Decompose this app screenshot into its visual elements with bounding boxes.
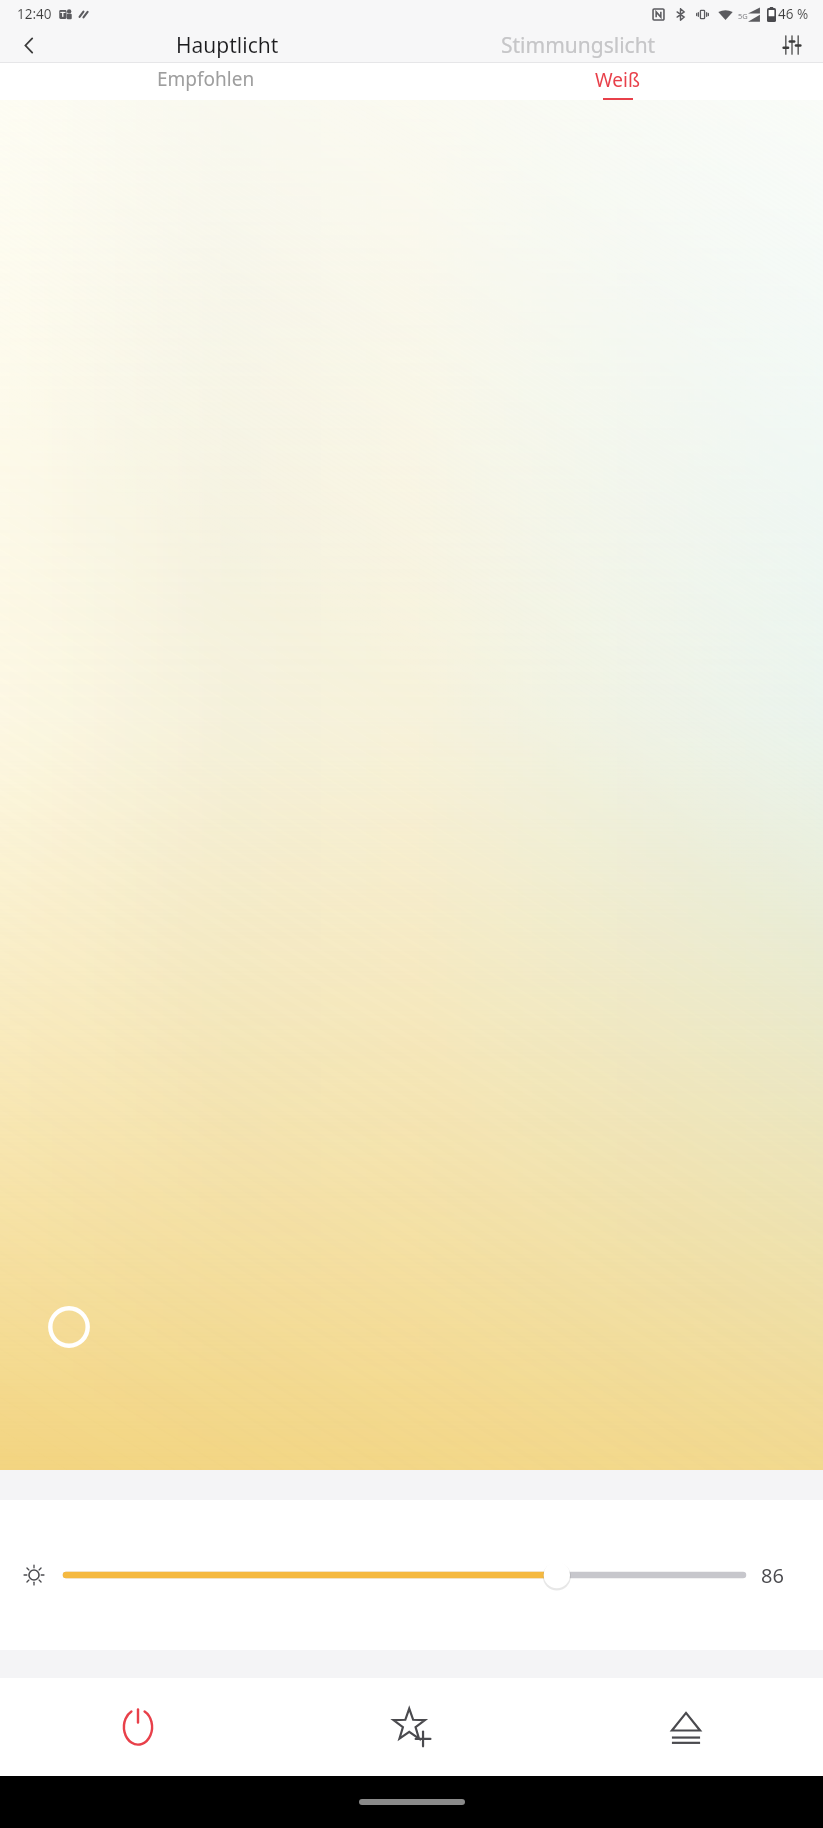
staticText: 5G: [738, 11, 748, 21]
button[interactable]: Selected colour: [48, 1306, 90, 1348]
staticText: Weiß: [595, 67, 640, 93]
button[interactable]: Stimmungslicht: [396, 28, 761, 62]
staticText: Stimmungslicht: [501, 31, 656, 60]
button[interactable]: Hauptlicht: [58, 28, 396, 62]
button[interactable]: Eject: [549, 1678, 823, 1776]
staticText: 86: [761, 1562, 784, 1589]
staticText: 46 %: [778, 5, 809, 23]
button[interactable]: Add to favourites: [275, 1678, 549, 1776]
button[interactable]: Power: [0, 1678, 275, 1776]
staticText: 12:40: [17, 5, 52, 23]
button[interactable]: Back: [0, 28, 58, 62]
button[interactable]: Settings: [761, 28, 823, 62]
button[interactable]: [66, 1555, 743, 1595]
button[interactable]: Empfohlen: [0, 63, 411, 100]
staticText: Empfohlen: [157, 66, 255, 92]
button[interactable]: Weiß: [411, 63, 823, 100]
staticText: Hauptlicht: [176, 31, 279, 60]
